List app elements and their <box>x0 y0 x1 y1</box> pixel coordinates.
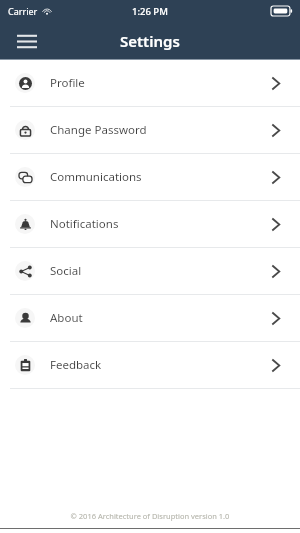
button[interactable]: Open navigation menu <box>12 26 42 56</box>
staticText: Social <box>50 263 82 279</box>
staticText: Settings <box>120 31 180 51</box>
button[interactable]: Notifications <box>0 201 300 247</box>
button[interactable]: Feedback <box>0 342 300 388</box>
staticText: Communications <box>50 169 142 185</box>
staticText: © 2016 Architecture of Disruption versio… <box>0 511 300 521</box>
staticText: Profile <box>50 75 85 91</box>
staticText: About <box>50 310 83 326</box>
staticText: 1:26 PM <box>132 5 168 18</box>
button[interactable]: Profile <box>0 60 300 106</box>
button[interactable]: About <box>0 295 300 341</box>
button[interactable]: Change Password <box>0 107 300 153</box>
staticText: Carrier <box>8 5 38 17</box>
button[interactable]: Communications <box>0 154 300 200</box>
staticText: Notifications <box>50 216 119 232</box>
button[interactable]: Social <box>0 248 300 294</box>
staticText: Feedback <box>50 357 102 373</box>
staticText: Change Password <box>50 122 147 138</box>
